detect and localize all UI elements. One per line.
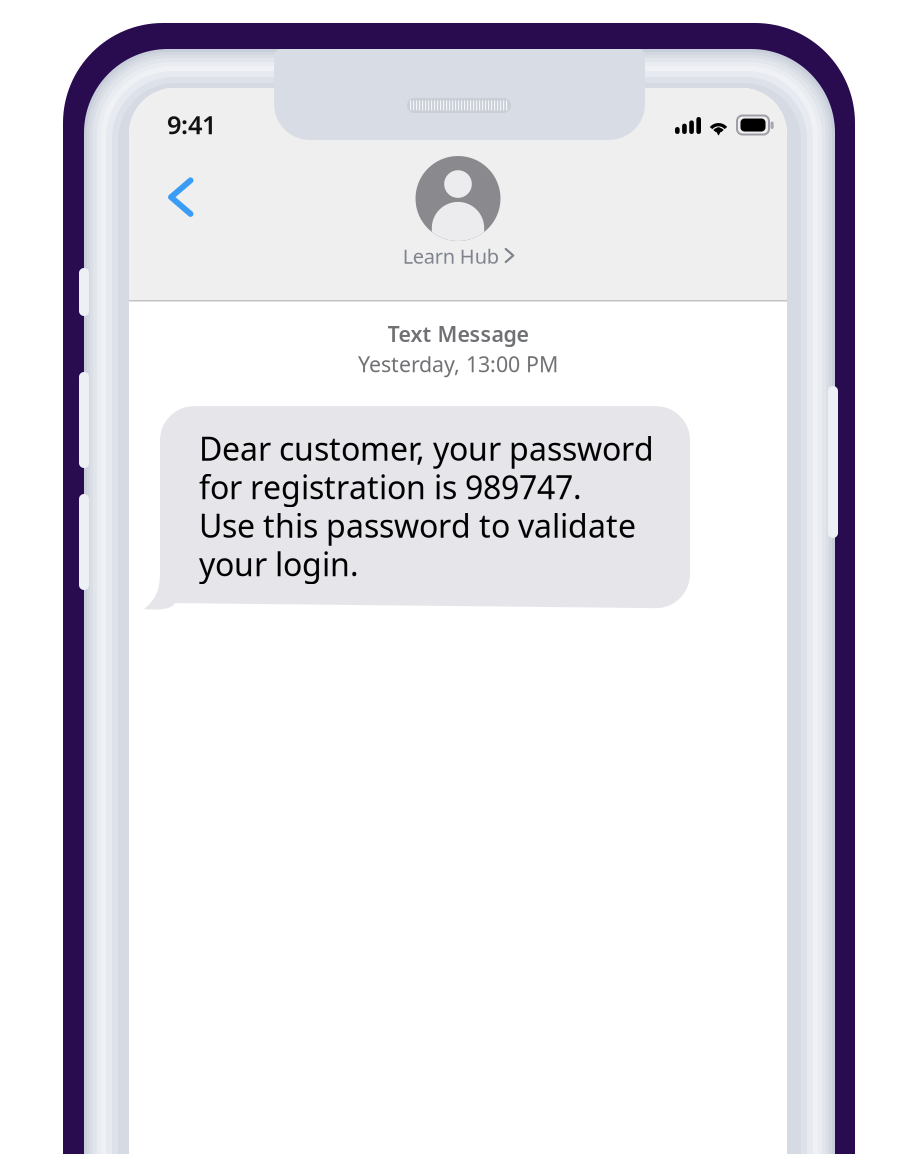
- staticText: 9:41: [167, 107, 216, 141]
- staticText: Learn Hub: [403, 243, 499, 269]
- staticText: Yesterday, 13:00 PM: [358, 350, 558, 378]
- staticText: Dear customer, your password for registr…: [199, 427, 654, 585]
- button[interactable]: Learn Hub: [385, 153, 531, 271]
- staticText: Text Message: [387, 319, 528, 348]
- button[interactable]: Back: [150, 160, 211, 234]
